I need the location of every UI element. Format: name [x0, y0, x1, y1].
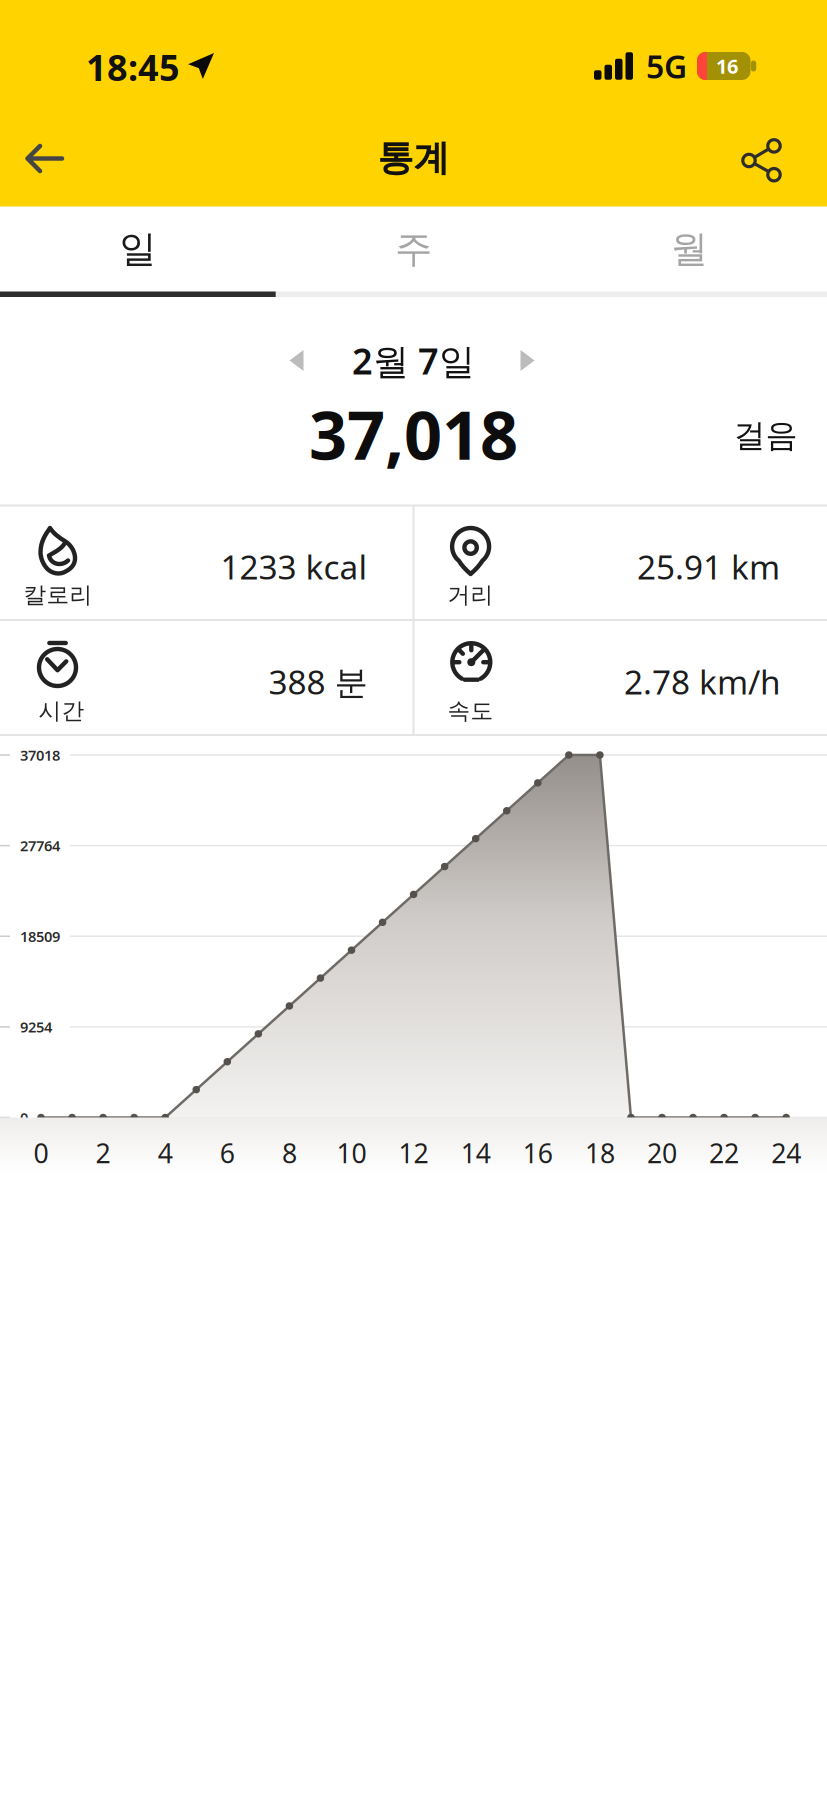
button[interactable]: Back: [22, 136, 66, 180]
staticText: 12: [399, 1135, 429, 1171]
staticText: 시간: [38, 697, 84, 725]
staticText: 월: [671, 226, 708, 272]
staticText: 18509: [20, 926, 60, 946]
button[interactable]: 주: [276, 206, 551, 291]
staticText: 2: [96, 1135, 111, 1171]
staticText: 25.91 km: [637, 544, 780, 589]
staticText: 속도: [448, 697, 494, 725]
staticText: 8: [282, 1135, 297, 1171]
staticText: 일: [119, 226, 156, 272]
staticText: 27764: [20, 836, 60, 855]
staticText: 4: [158, 1135, 173, 1171]
staticText: 20: [647, 1135, 677, 1171]
staticText: 18:45: [86, 43, 180, 91]
staticText: 0: [33, 1135, 48, 1171]
staticText: 5G: [646, 45, 687, 87]
staticText: 통계: [377, 136, 449, 180]
button[interactable]: Next day: [518, 348, 536, 372]
staticText: 0: [20, 1108, 28, 1127]
staticText: 2.78 km/h: [624, 659, 781, 704]
staticText: 16: [716, 53, 738, 79]
staticText: 1233 kcal: [220, 544, 367, 589]
staticText: 6: [220, 1135, 235, 1171]
staticText: 16: [523, 1135, 553, 1171]
staticText: 2월 7일: [352, 337, 475, 384]
staticText: 14: [461, 1135, 491, 1171]
staticText: 37018: [20, 745, 60, 765]
staticText: 칼로리: [23, 581, 92, 609]
staticText: 22: [709, 1135, 739, 1171]
staticText: 37,018: [309, 390, 518, 478]
staticText: 거리: [448, 581, 494, 609]
button[interactable]: Share: [741, 138, 783, 182]
staticText: 388 분: [268, 659, 367, 704]
staticText: 10: [336, 1135, 366, 1171]
staticText: 9254: [20, 1017, 52, 1037]
staticText: 24: [771, 1135, 801, 1171]
button[interactable]: 일: [0, 206, 276, 291]
staticText: 18: [585, 1135, 615, 1171]
button[interactable]: 월: [551, 206, 827, 291]
staticText: 주: [395, 226, 432, 272]
staticText: 걸음: [733, 416, 797, 455]
button[interactable]: Previous day: [287, 348, 305, 372]
